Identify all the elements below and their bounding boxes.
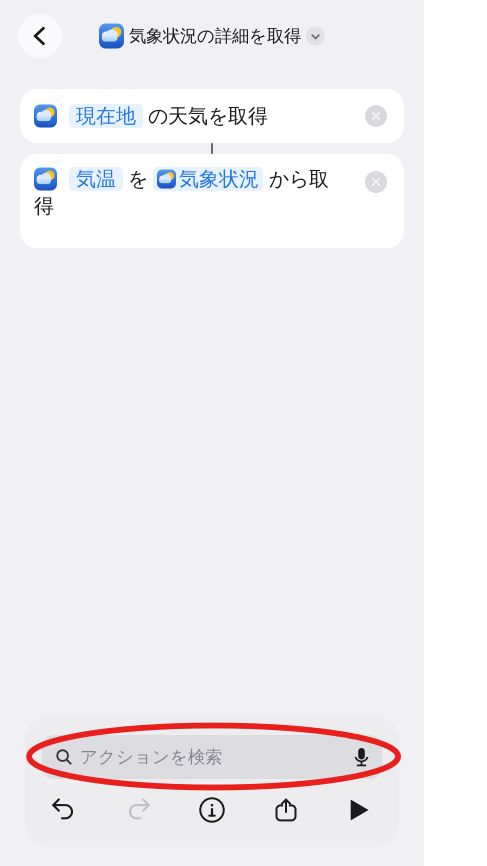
staticText: 気温	[76, 167, 116, 191]
button[interactable]: Back	[18, 14, 62, 58]
staticText: 気象状況	[179, 167, 259, 191]
staticText: を	[128, 167, 148, 191]
staticText: 得	[34, 194, 54, 218]
button[interactable]: Undo	[27, 789, 101, 831]
staticText: の天気を取得	[148, 104, 268, 128]
button[interactable]: Run	[323, 789, 397, 831]
button[interactable]: 気温	[20, 154, 404, 248]
button[interactable]: Details	[175, 789, 249, 831]
button[interactable]: Redo	[101, 789, 175, 831]
staticText: アクションを検索	[80, 746, 222, 768]
button[interactable]: Remove action	[365, 171, 387, 193]
staticText: から取	[269, 167, 329, 191]
staticText: 現在地	[76, 104, 136, 128]
button[interactable]: Remove action	[365, 105, 387, 127]
button[interactable]: Share	[249, 789, 323, 831]
button[interactable]: 現在地	[20, 89, 404, 143]
button[interactable]: Shortcut options	[99, 23, 325, 48]
staticText: 気象状況の詳細を取得	[129, 25, 301, 47]
